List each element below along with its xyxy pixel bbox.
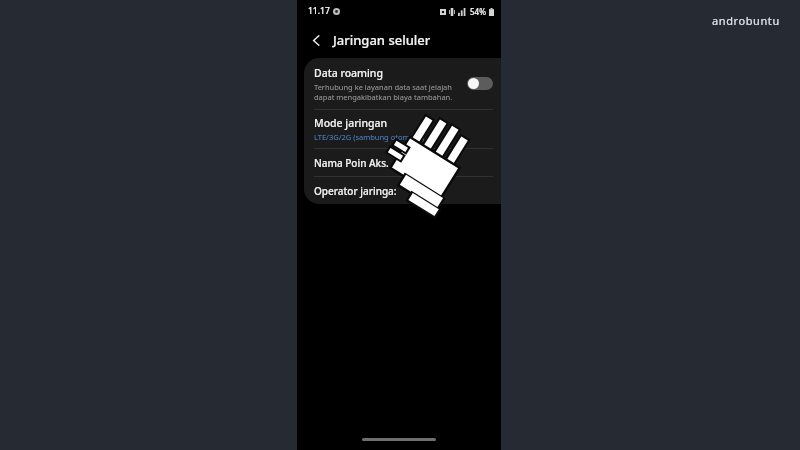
staticText: 11.17	[308, 5, 330, 17]
staticText: Operator jaringa:	[314, 184, 397, 198]
staticText: Mode jaringan	[314, 116, 388, 130]
button[interactable]: Data roaming	[304, 58, 501, 109]
button[interactable]: Mode jaringan	[304, 110, 501, 148]
staticText: androbuntu	[712, 13, 780, 28]
staticText: Nama Poin Aks.	[314, 156, 389, 170]
staticText: 54%	[470, 6, 486, 17]
staticText: Terhubung ke layanan data saat jelajah d…	[314, 82, 453, 102]
staticText: Data roaming	[314, 66, 383, 80]
staticText: LTE/3G/2G (sambung otomatis)	[314, 132, 425, 142]
button[interactable]: Nama Poin Aks.	[304, 149, 501, 176]
button[interactable]: Operator jaringa:	[304, 177, 501, 204]
button[interactable]: Back	[305, 29, 327, 51]
staticText: Jaringan seluler	[333, 31, 431, 49]
button[interactable]: Data roaming toggle	[467, 77, 493, 90]
